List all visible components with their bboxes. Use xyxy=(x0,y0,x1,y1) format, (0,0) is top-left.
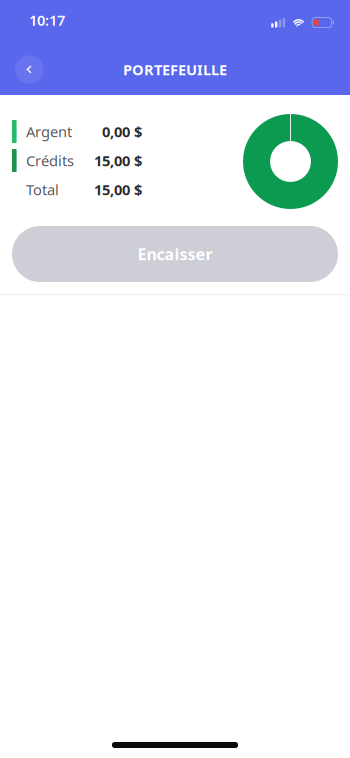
staticText: 15,00 $ xyxy=(94,151,142,170)
staticText: Argent xyxy=(26,122,72,141)
button[interactable]: Encaisser xyxy=(12,226,338,282)
staticText: Encaisser xyxy=(137,243,212,265)
staticText: PORTEFEUILLE xyxy=(123,60,227,79)
staticText: Crédits xyxy=(26,151,74,170)
staticText: 15,00 $ xyxy=(94,180,142,199)
staticText: Total xyxy=(26,180,59,199)
staticText: 10:17 xyxy=(29,10,65,30)
button[interactable]: Back xyxy=(15,55,43,84)
staticText: 0,00 $ xyxy=(102,122,142,141)
